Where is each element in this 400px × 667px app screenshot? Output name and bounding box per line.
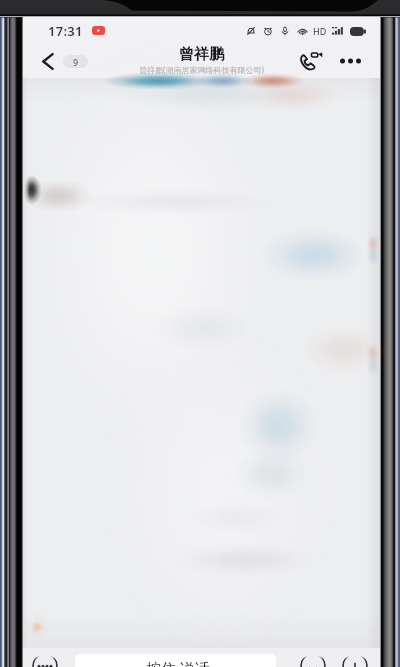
- button[interactable]: Back, 9 unread: [23, 47, 96, 76]
- button[interactable]: Video call: [295, 45, 328, 77]
- staticText: 曾祥鹏(湖南居家网络科技有限公司): [139, 64, 264, 75]
- button[interactable]: More options: [337, 48, 364, 74]
- button[interactable]: Emoji: [300, 656, 326, 667]
- staticText: 曾祥鹏: [179, 45, 224, 64]
- button[interactable]: More functions: [342, 656, 368, 667]
- button[interactable]: Voice input: [32, 656, 58, 667]
- button[interactable]: 按住 说话: [75, 654, 276, 667]
- staticText: 17:31: [48, 22, 83, 40]
- staticText: 按住 说话: [146, 658, 210, 667]
- staticText: HD: [313, 25, 327, 37]
- staticText: 9: [73, 56, 79, 68]
